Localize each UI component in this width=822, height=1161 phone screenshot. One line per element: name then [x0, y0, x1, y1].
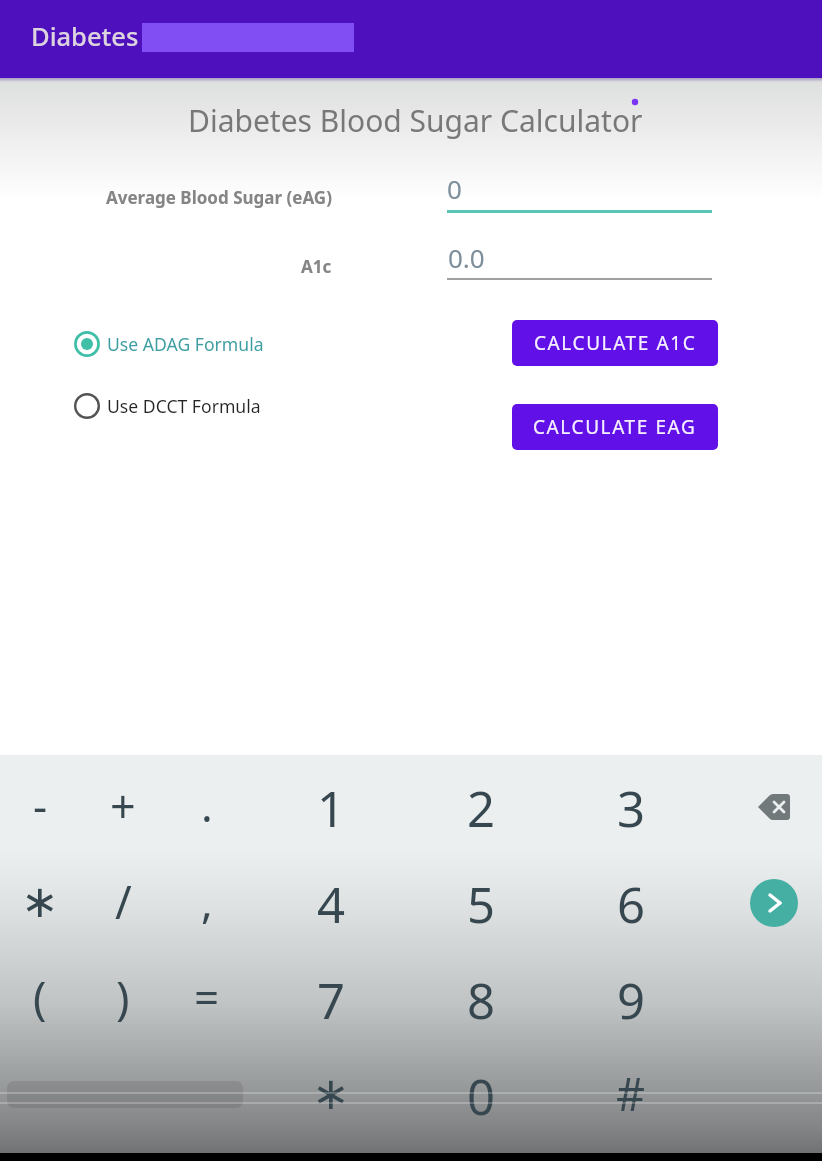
- button[interactable]: 4: [294, 871, 368, 931]
- staticText: 0.0: [448, 240, 485, 275]
- button[interactable]: 9: [594, 967, 668, 1027]
- button[interactable]: Space: [7, 1081, 243, 1108]
- staticText: #: [616, 1063, 646, 1123]
- staticText: ∗: [21, 875, 59, 927]
- button[interactable]: Next: [750, 879, 798, 927]
- staticText: ∗: [312, 1067, 350, 1119]
- staticText: 8: [467, 967, 496, 1027]
- button[interactable]: #: [594, 1063, 668, 1123]
- staticText: ,: [201, 871, 213, 931]
- button[interactable]: +: [86, 775, 160, 835]
- button[interactable]: -: [3, 775, 77, 835]
- staticText: CALCULATE A1C: [534, 330, 697, 356]
- button[interactable]: CALCULATE EAG: [512, 404, 718, 450]
- button[interactable]: 1: [294, 775, 368, 835]
- button[interactable]: 5: [444, 871, 518, 931]
- staticText: 0: [447, 171, 462, 206]
- button[interactable]: 0: [444, 1063, 518, 1123]
- staticText: (: [33, 967, 47, 1027]
- button[interactable]: A1c input: [447, 235, 712, 283]
- staticText: Average Blood Sugar (eAG): [106, 186, 332, 209]
- staticText: Diabetes Blood Sugar Calculator: [188, 100, 643, 141]
- button[interactable]: 7: [294, 967, 368, 1027]
- button[interactable]: 2: [444, 775, 518, 835]
- staticText: 9: [617, 967, 646, 1027]
- staticText: =: [194, 967, 220, 1027]
- staticText: 4: [317, 871, 346, 931]
- staticText: Use ADAG Formula: [107, 332, 264, 356]
- button[interactable]: Use DCCT Formula: [70, 389, 261, 423]
- button[interactable]: ,: [170, 871, 244, 931]
- button[interactable]: ∗: [294, 1063, 368, 1123]
- button[interactable]: ∗: [3, 871, 77, 931]
- button[interactable]: Use ADAG Formula: [70, 327, 264, 361]
- staticText: 5: [467, 871, 496, 931]
- staticText: A1c: [301, 255, 332, 278]
- staticText: Diabetes: [31, 19, 139, 54]
- staticText: CALCULATE EAG: [533, 414, 697, 440]
- staticText: -: [33, 775, 48, 835]
- staticText: 1: [317, 775, 346, 835]
- staticText: /: [115, 871, 132, 931]
- staticText: 0: [467, 1063, 496, 1123]
- button[interactable]: 6: [594, 871, 668, 931]
- button[interactable]: CALCULATE A1C: [512, 320, 718, 366]
- button[interactable]: =: [170, 967, 244, 1027]
- staticText: 7: [317, 967, 346, 1027]
- button[interactable]: .: [170, 775, 244, 835]
- button[interactable]: Average blood sugar input: [447, 166, 712, 215]
- button[interactable]: (: [3, 967, 77, 1027]
- button[interactable]: Backspace: [752, 785, 796, 829]
- button[interactable]: /: [86, 871, 160, 931]
- staticText: 2: [467, 775, 496, 835]
- button[interactable]: 8: [444, 967, 518, 1027]
- staticText: 6: [617, 871, 646, 931]
- staticText: .: [201, 775, 213, 835]
- button[interactable]: ): [86, 967, 160, 1027]
- staticText: ): [116, 967, 130, 1027]
- staticText: 3: [617, 775, 646, 835]
- staticText: +: [110, 775, 136, 835]
- staticText: Use DCCT Formula: [107, 394, 261, 418]
- button[interactable]: 3: [594, 775, 668, 835]
